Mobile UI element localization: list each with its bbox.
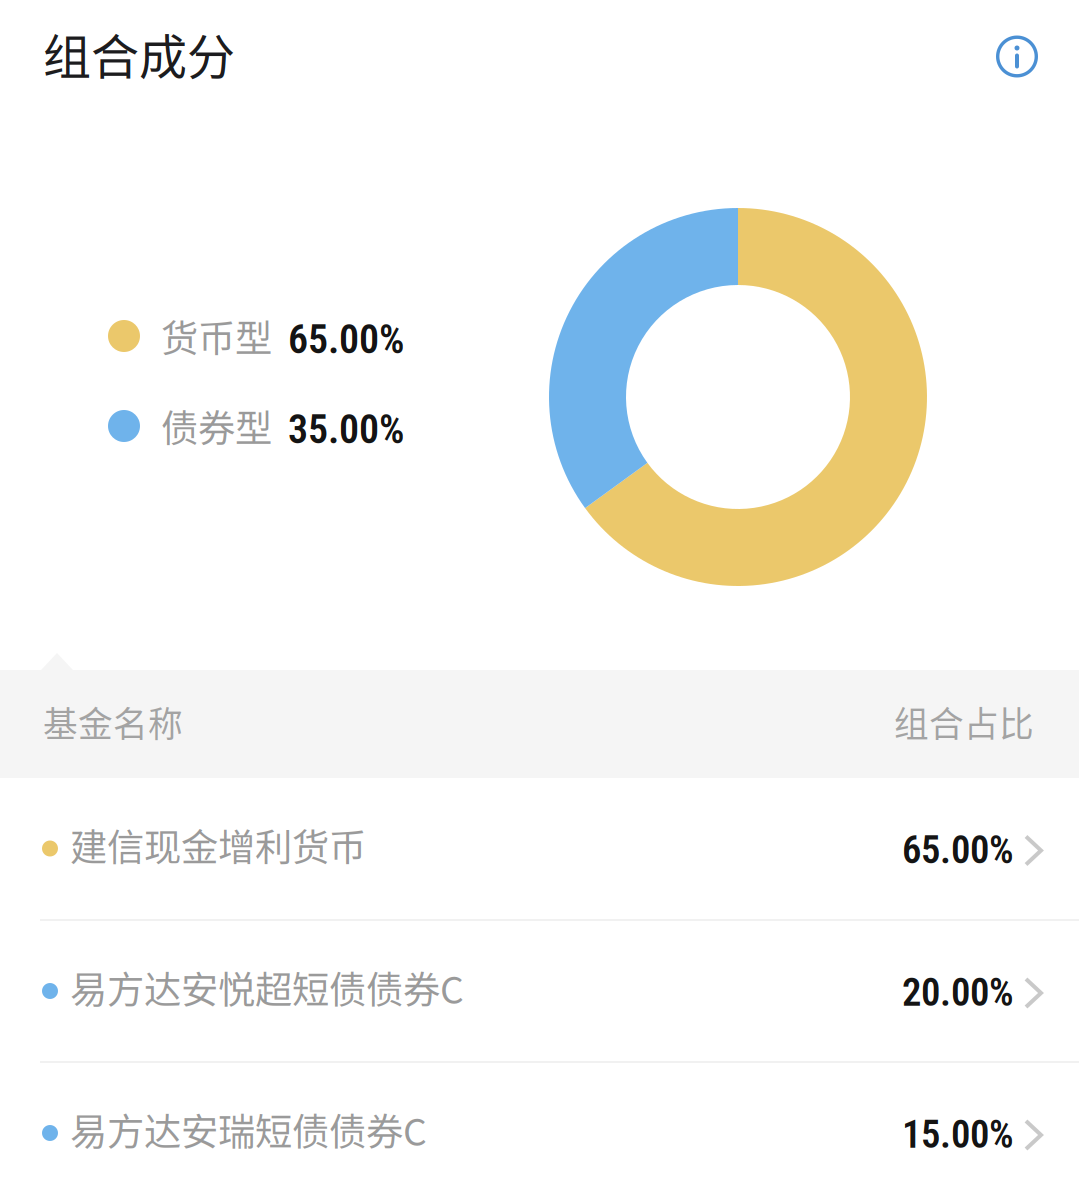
- staticText: 65.00%: [902, 827, 1014, 873]
- button[interactable]: 易方达安瑞短债债券C: [0, 1063, 1079, 1187]
- staticText: 35.00%: [288, 406, 404, 453]
- button[interactable]: Info: [990, 29, 1044, 83]
- staticText: 易方达安悦超短债债券C: [70, 960, 464, 1015]
- staticText: 建信现金增利货币: [70, 818, 366, 872]
- staticText: 组合成分: [43, 19, 235, 88]
- staticText: 20.00%: [902, 970, 1014, 1015]
- button[interactable]: 建信现金增利货币: [0, 778, 1079, 919]
- staticText: 债券型: [161, 399, 272, 453]
- staticText: 基金名称: [43, 697, 183, 747]
- staticText: 货币型: [161, 309, 272, 363]
- button[interactable]: 易方达安悦超短债债券C: [0, 921, 1079, 1061]
- staticText: 组合占比: [894, 697, 1034, 747]
- staticText: 易方达安瑞短债债券C: [70, 1102, 427, 1157]
- staticText: 65.00%: [288, 316, 404, 363]
- staticText: 15.00%: [902, 1112, 1014, 1157]
